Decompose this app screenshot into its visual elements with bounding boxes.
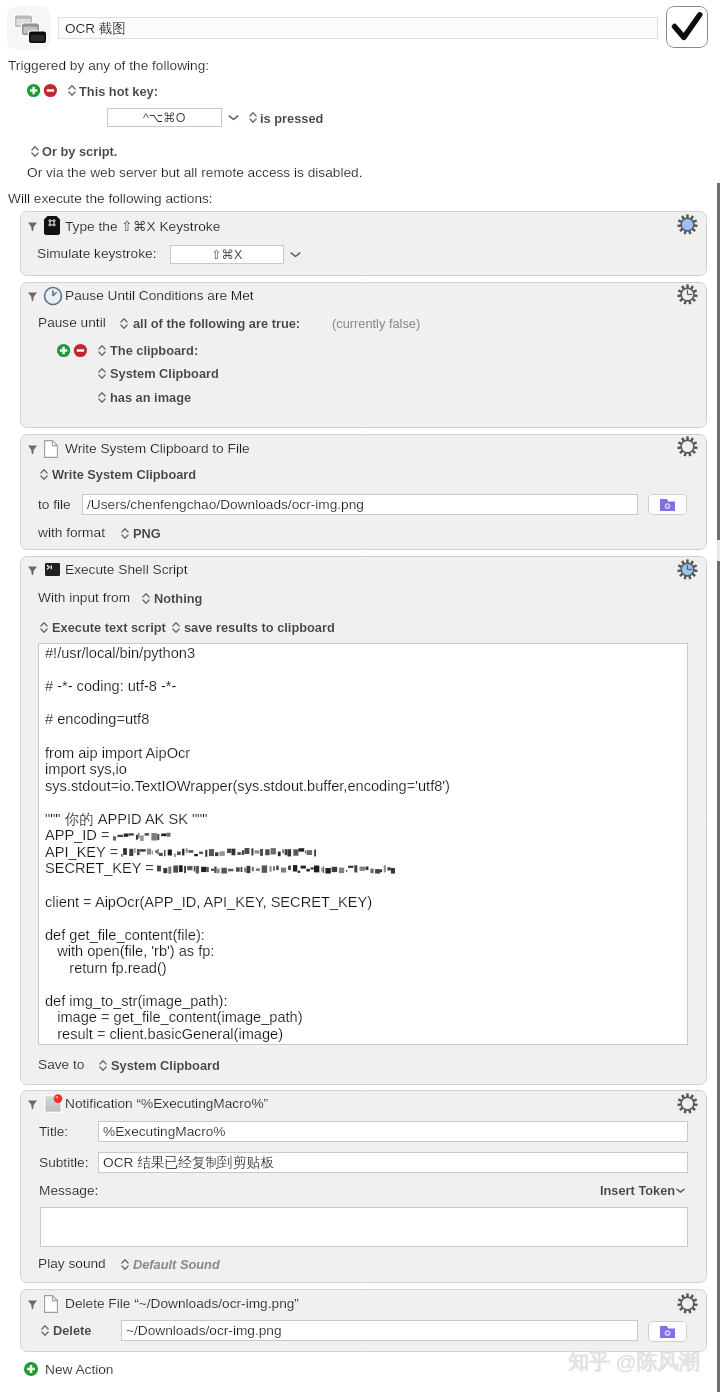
staticText: def img_to_str(image_path): [45,993,228,1009]
staticText: This hot key: [79,84,158,98]
button[interactable] [20,282,707,428]
staticText: #!/usr/local/bin/python3 [45,645,196,661]
button[interactable]: Choose file [648,494,687,515]
staticText: With input from [38,590,131,605]
button[interactable]: Choose file [648,1321,687,1342]
button[interactable]: ~/Downloads/ocr-img.png [121,1320,638,1341]
button[interactable]: /Users/chenfengchao/Downloads/ocr-img.pn… [82,494,638,515]
staticText: Type the ⇧⌘X Keystroke [65,218,221,234]
staticText: Insert Token [600,1183,676,1197]
staticText: API_KEY = [45,844,123,860]
staticText: Nothing [154,591,203,605]
staticText: image = get_file_content(image_path) [45,1009,303,1025]
staticText: is pressed [260,111,324,125]
staticText: Message: [39,1183,99,1198]
button[interactable]: Action options [678,1294,697,1313]
staticText: The clipboard: [110,343,199,357]
staticText: return fp.read() [45,960,167,976]
button[interactable]: Action options [678,215,697,234]
staticText: ~/Downloads/ocr-img.png [126,1323,282,1338]
staticText: Title: [39,1124,69,1139]
staticText: (currently false) [332,316,421,330]
button[interactable]: OCR 结果已经复制到剪贴板 [98,1152,688,1173]
button[interactable]: Macro enabled [666,6,708,48]
staticText: client = AipOcr(APP_ID, API_KEY, SECRET_… [45,894,373,910]
button[interactable] [20,434,707,550]
staticText: Write System Clipboard [52,467,197,481]
staticText: System Clipboard [111,1058,220,1072]
staticText: System Clipboard [110,366,219,380]
staticText: %ExecutingMacro% [103,1124,226,1139]
staticText: /Users/chenfengchao/Downloads/ocr-img.pn… [87,497,364,512]
button[interactable] [20,1289,707,1352]
staticText: ⇧⌘X [211,247,243,262]
button[interactable]: Macro icon [7,6,51,50]
button[interactable] [20,211,707,276]
button[interactable]: Action options [678,285,697,304]
staticText: Delete [53,1323,92,1337]
staticText: sys.stdout=io.TextIOWrapper(sys.stdout.b… [45,778,450,794]
staticText: ^⌥⌘O [143,110,186,125]
staticText: SECRET_KEY = [45,860,158,876]
staticText: Subtitle: [39,1155,89,1170]
button[interactable]: %ExecutingMacro% [98,1121,688,1142]
staticText: all of the following are true: [133,316,301,330]
staticText: Delete File “~/Downloads/ocr-img.png” [65,1296,299,1311]
staticText: to file [38,497,71,512]
staticText: PNG [133,526,161,540]
staticText: Play sound [38,1256,106,1271]
staticText: OCR 截图 [65,20,126,37]
staticText: Pause until [38,315,106,330]
staticText: Pause Until Conditions are Met [65,288,254,303]
button[interactable]: ⇧⌘X [170,245,284,264]
staticText: Execute text script [52,620,166,634]
staticText: """ 你的 APPID AK SK """ [45,810,208,828]
staticText: Or via the web server but all remote acc… [27,165,363,180]
button[interactable]: Action options [678,560,697,579]
staticText: # -*- coding: utf-8 -*- [45,678,177,694]
staticText: Save to [38,1057,85,1072]
staticText: save results to clipboard [184,620,335,634]
staticText: from aip import AipOcr [45,745,191,761]
staticText: with format [38,525,105,540]
button[interactable]: Action options [678,437,697,456]
staticText: Or by script. [42,144,118,158]
button[interactable] [40,1207,688,1247]
staticText: result = client.basicGeneral(image) [45,1026,284,1042]
staticText: Notification “%ExecutingMacro%” [65,1096,269,1111]
staticText: OCR 结果已经复制到剪贴板 [103,1154,275,1171]
staticText: has an image [110,390,192,404]
button[interactable]: ^⌥⌘O [107,108,222,127]
staticText: APP_ID = [45,827,114,843]
button[interactable] [20,556,707,1085]
staticText: Execute Shell Script [65,562,188,577]
staticText: New Action [45,1362,114,1377]
staticText: # encoding=utf8 [45,711,150,727]
staticText: def get_file_content(file): [45,927,205,943]
staticText: Default Sound [133,1257,220,1271]
button[interactable]: OCR 截图 [58,17,658,39]
button[interactable] [20,1090,707,1283]
staticText: import sys,io [45,761,127,777]
button[interactable]: Action options [678,1094,697,1113]
staticText: with open(file, 'rb') as fp: [45,943,215,959]
staticText: Write System Clipboard to File [65,441,250,456]
button[interactable] [38,643,688,1045]
staticText: Triggered by any of the following: [8,58,210,73]
staticText: Will execute the following actions: [8,191,213,206]
staticText: Simulate keystroke: [37,246,157,261]
staticText: 知乎 @陈风潮 [568,1349,700,1375]
button[interactable]: New Action [24,1360,114,1378]
